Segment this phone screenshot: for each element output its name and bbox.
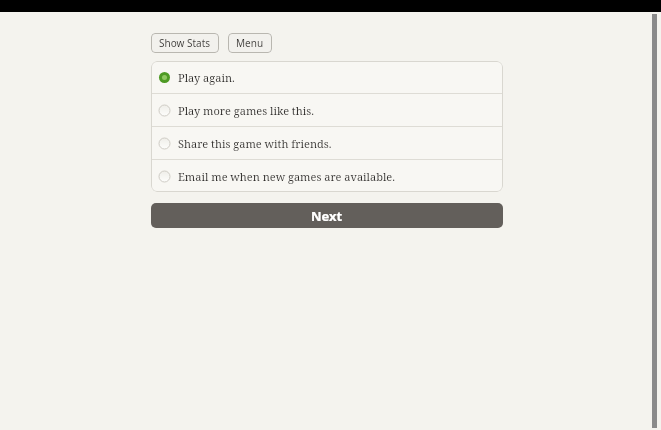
staticText: Show Stats — [159, 36, 211, 50]
staticText: Menu — [236, 36, 264, 50]
button[interactable]: Selected — [151, 61, 503, 93]
button[interactable]: Not selected — [151, 94, 503, 126]
staticText: Play again. — [178, 70, 235, 85]
button[interactable]: Not selected — [151, 127, 503, 159]
button[interactable]: Next — [151, 203, 503, 228]
other: Not selected — [159, 138, 170, 149]
staticText: Email me when new games are available. — [178, 169, 396, 184]
staticText: Share this game with friends. — [178, 136, 332, 151]
other: Selected — [159, 72, 170, 83]
other: Not selected — [159, 171, 170, 182]
staticText: Play more games like this. — [178, 103, 314, 118]
staticText: Next — [311, 207, 343, 225]
button[interactable]: Menu — [228, 33, 272, 53]
button[interactable]: Show Stats — [151, 33, 219, 53]
other: Not selected — [159, 105, 170, 116]
button[interactable]: Not selected — [151, 160, 503, 192]
